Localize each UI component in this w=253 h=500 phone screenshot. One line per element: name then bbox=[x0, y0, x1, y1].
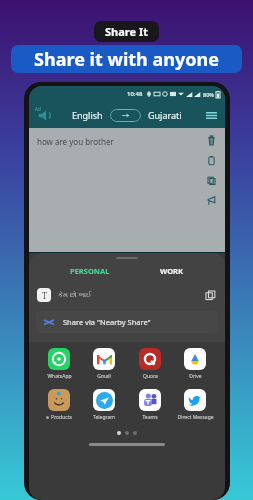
button[interactable]: Swap languages bbox=[110, 109, 141, 122]
button[interactable]: Drive bbox=[173, 348, 217, 380]
button[interactable]: Share it with anyone bbox=[11, 45, 242, 73]
button[interactable]: Menu bbox=[203, 107, 219, 123]
staticText: Direct Message bbox=[177, 414, 214, 421]
button[interactable]: Copy bbox=[204, 173, 219, 188]
button[interactable]: WORK bbox=[150, 264, 194, 278]
staticText: Gujarati bbox=[148, 109, 182, 121]
staticText: WhatsApp bbox=[47, 373, 72, 380]
staticText: PERSONAL bbox=[70, 266, 110, 276]
staticText: કેમ છો ભાઈ bbox=[58, 290, 92, 300]
button[interactable]: Share It bbox=[94, 21, 159, 42]
button[interactable]: Paste bbox=[204, 153, 219, 168]
staticText: Share It bbox=[105, 24, 148, 39]
button[interactable]: Copy text bbox=[203, 288, 217, 302]
button[interactable]: Quora bbox=[128, 348, 172, 380]
staticText: Share it with anyone bbox=[34, 47, 219, 72]
staticText: Quora bbox=[143, 373, 158, 380]
button[interactable]: Sound bbox=[35, 106, 53, 124]
staticText: Gmail bbox=[97, 373, 111, 380]
button[interactable]: Direct Message bbox=[173, 389, 217, 421]
staticText: Teams bbox=[142, 414, 158, 421]
button[interactable]: T bbox=[37, 285, 217, 305]
button[interactable]: Announce bbox=[204, 193, 219, 208]
button[interactable]: Products bbox=[37, 389, 81, 421]
staticText: Products bbox=[51, 414, 72, 421]
button[interactable]: PERSONAL bbox=[60, 264, 120, 278]
button[interactable]: English bbox=[70, 107, 105, 123]
button[interactable]: Telegram bbox=[82, 389, 126, 421]
staticText: English bbox=[72, 109, 103, 121]
button[interactable]: WhatsApp bbox=[37, 348, 81, 380]
button[interactable]: Teams bbox=[128, 389, 172, 421]
button[interactable]: Delete bbox=[204, 133, 219, 148]
staticText: how are you brother bbox=[37, 136, 114, 147]
button[interactable]: Gujarati bbox=[146, 107, 184, 123]
staticText: Share via "Nearby Share" bbox=[63, 317, 151, 327]
staticText: 10:48 bbox=[127, 90, 143, 98]
button[interactable]: Gmail bbox=[82, 348, 126, 380]
button[interactable]: Share via "Nearby Share" bbox=[36, 311, 218, 333]
staticText: WORK bbox=[160, 266, 184, 276]
staticText: 80% bbox=[203, 91, 214, 98]
staticText: T bbox=[42, 290, 47, 301]
staticText: Drive bbox=[189, 373, 202, 380]
staticText: Telegram bbox=[93, 414, 115, 421]
staticText: Ad bbox=[35, 106, 41, 112]
